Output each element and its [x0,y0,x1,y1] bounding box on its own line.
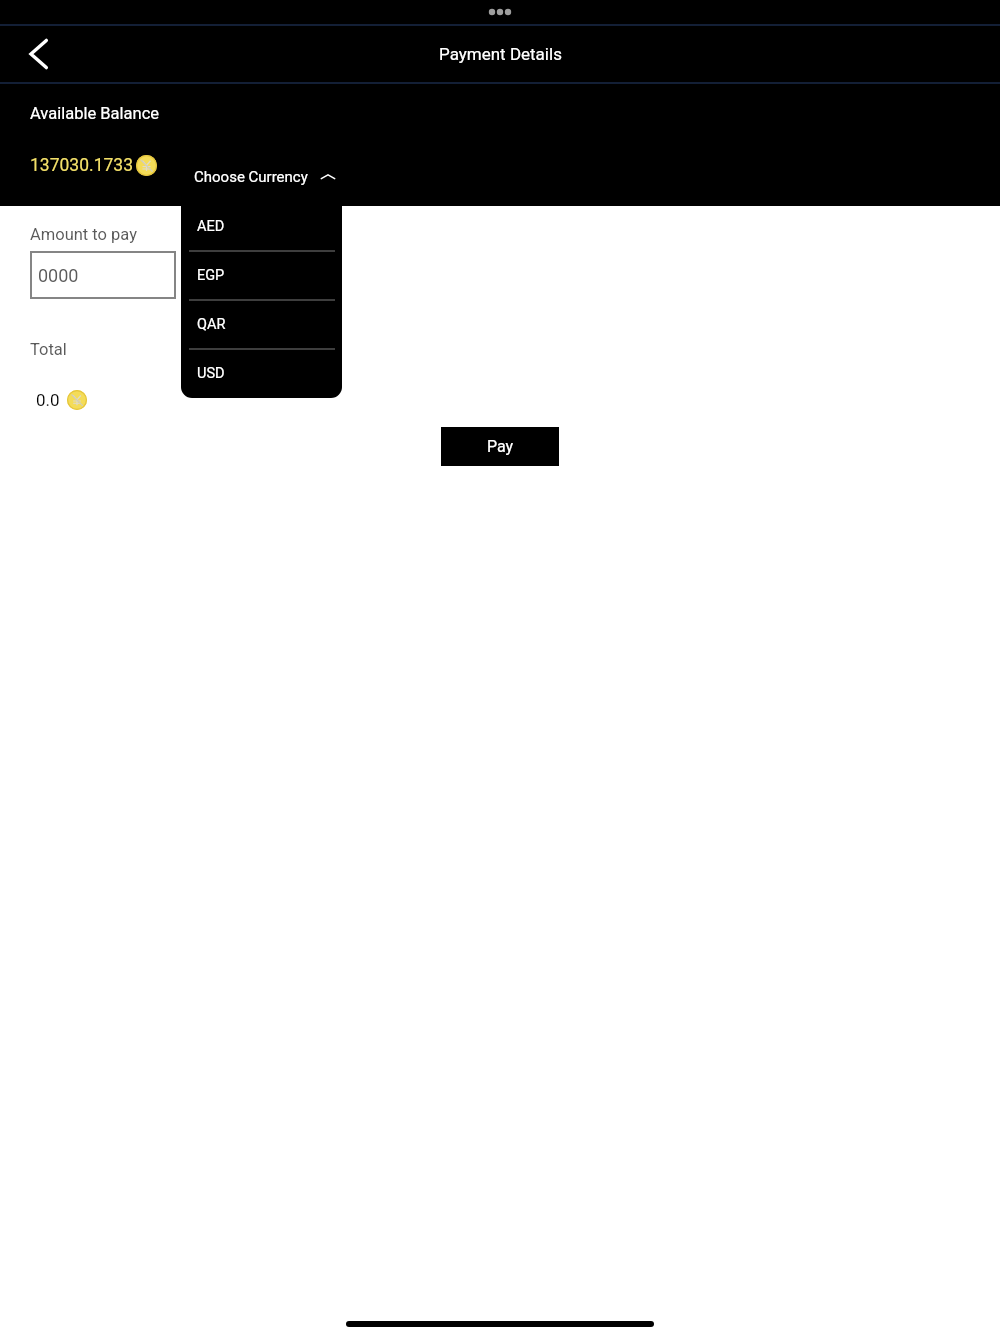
staticText: AED [197,218,225,235]
staticText: Choose Currency [194,168,308,186]
staticText: Total [30,340,67,359]
button[interactable]: QAR [181,300,342,349]
button[interactable]: Pay [441,427,559,466]
staticText: 0.0 [36,390,60,410]
staticText: Available Balance [30,104,160,123]
staticText: Payment Details [439,44,562,64]
button[interactable]: USD [181,349,342,398]
staticText: Amount to pay [30,225,138,244]
staticText: QAR [197,316,226,333]
button[interactable]: EGP [181,251,342,300]
button[interactable]: AED [181,202,342,251]
staticText: Pay [487,437,514,456]
staticText: USD [197,365,225,382]
button[interactable]: Back [9,25,67,83]
button[interactable]: 0000 [30,251,176,299]
staticText: 0000 [38,265,79,286]
staticText: 137030.1733 [30,155,133,176]
staticText: EGP [197,267,225,284]
button[interactable]: Choose Currency [181,154,342,199]
